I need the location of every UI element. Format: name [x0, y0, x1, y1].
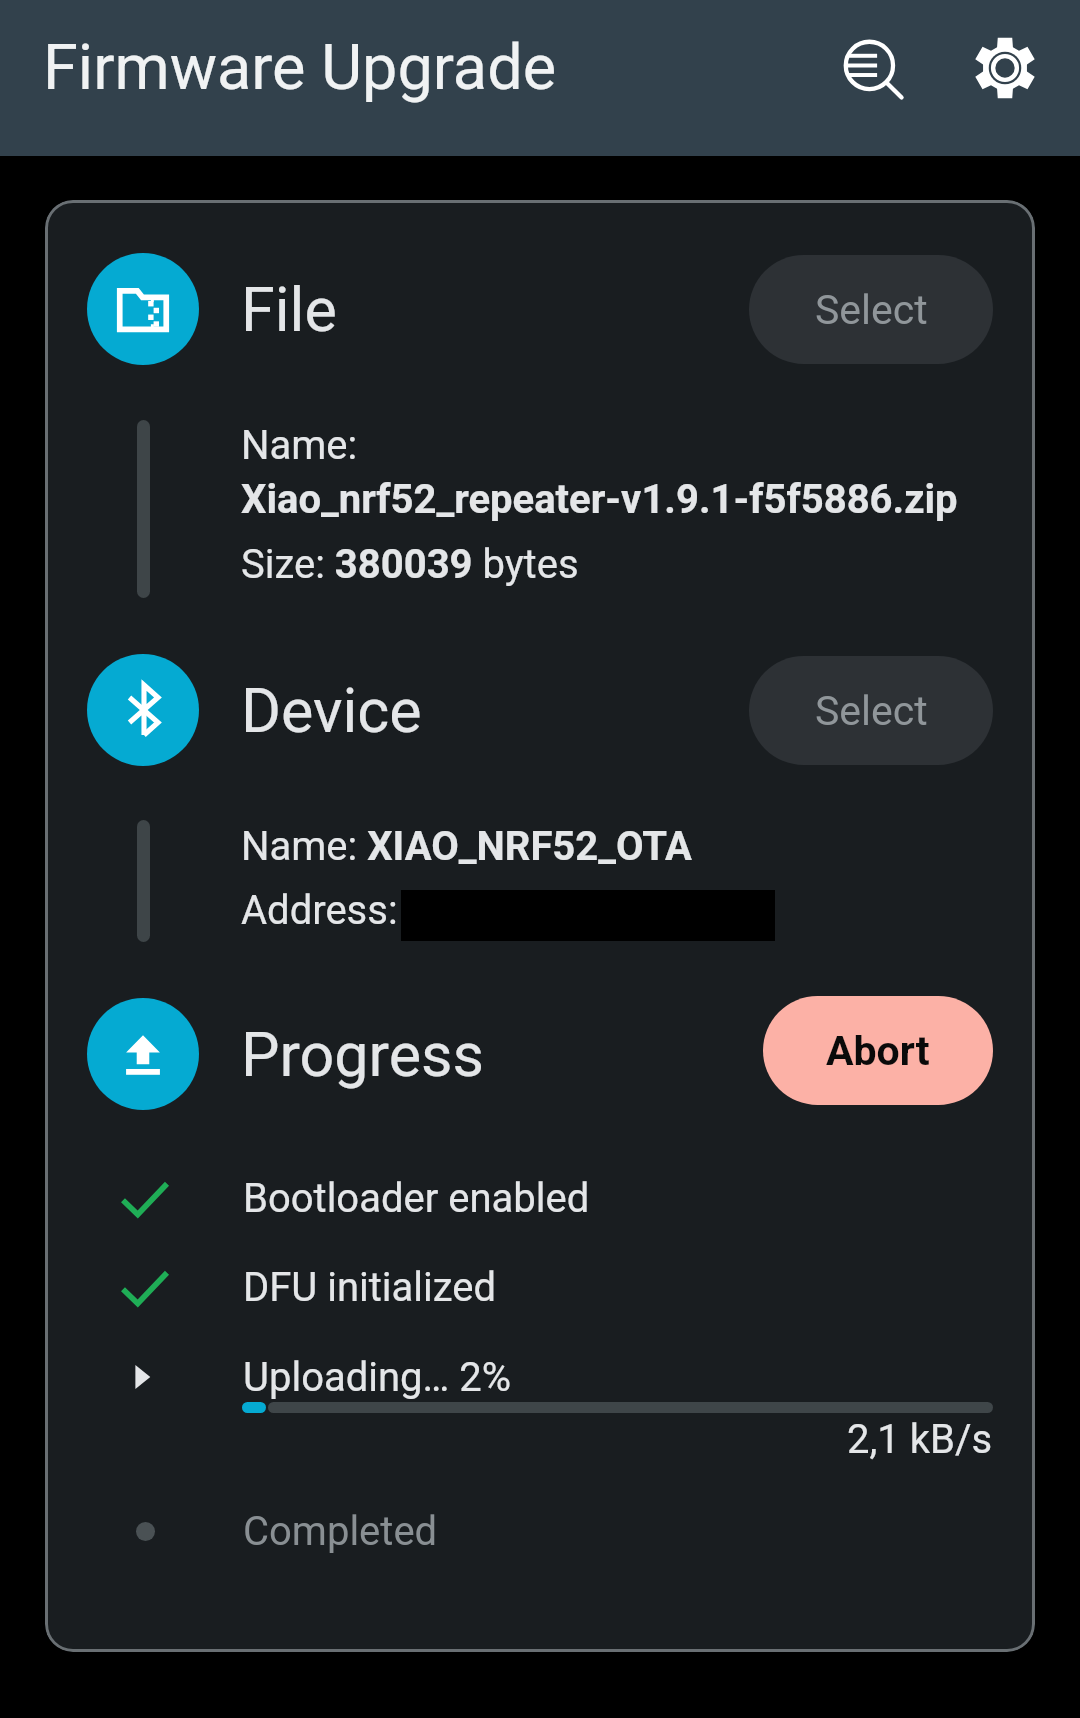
staticText: Device	[241, 675, 422, 746]
staticText: File	[241, 274, 337, 345]
button[interactable]: Bluetooth device	[87, 654, 199, 766]
staticText: Abort	[826, 1027, 930, 1075]
staticText: Uploading… 2%	[243, 1354, 511, 1401]
button[interactable]: File	[87, 253, 199, 365]
staticText: DFU initialized	[243, 1264, 497, 1311]
button[interactable]: Upload progress	[87, 998, 199, 1110]
staticText: Completed	[243, 1508, 438, 1555]
staticText: 2,1 kB/s	[847, 1416, 993, 1463]
button[interactable]: Abort	[763, 996, 993, 1105]
button[interactable]: Search	[813, 9, 939, 135]
staticText: Name: XIAO_NRF52_OTA	[241, 823, 692, 870]
staticText: Address:	[241, 887, 398, 934]
staticText: Select	[815, 687, 928, 735]
button[interactable]: Settings	[942, 5, 1068, 131]
staticText: Name:	[241, 422, 358, 469]
button[interactable]: Select	[749, 656, 993, 765]
staticText: Size: 380039 bytes	[241, 541, 579, 588]
staticText: Bootloader enabled	[243, 1175, 590, 1222]
staticText: Progress	[241, 1019, 485, 1090]
staticText: Xiao_nrf52_repeater-v1.9.1-f5f5886.zip	[241, 476, 958, 523]
staticText: Select	[815, 286, 928, 334]
staticText: Firmware Upgrade	[43, 31, 816, 105]
button[interactable]: Select	[749, 255, 993, 364]
